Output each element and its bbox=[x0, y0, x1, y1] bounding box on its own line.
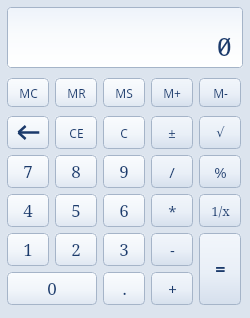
button[interactable]: 1/x bbox=[199, 194, 241, 227]
button[interactable]: √ bbox=[199, 116, 241, 149]
button[interactable]: * bbox=[151, 194, 193, 227]
button[interactable]: ± bbox=[151, 116, 193, 149]
button[interactable]: C bbox=[103, 116, 145, 149]
staticText: 9 bbox=[119, 160, 129, 183]
staticText: . bbox=[122, 277, 127, 300]
button[interactable]: 3 bbox=[103, 233, 145, 266]
staticText: ± bbox=[168, 124, 176, 142]
staticText: 4 bbox=[23, 199, 33, 222]
button[interactable]: 4 bbox=[7, 194, 49, 227]
staticText: / bbox=[169, 162, 175, 182]
button[interactable]: MR bbox=[55, 78, 97, 107]
staticText: MC bbox=[19, 85, 38, 101]
button[interactable]: M+ bbox=[151, 78, 193, 107]
button[interactable]: - bbox=[151, 233, 193, 266]
staticText: % bbox=[214, 162, 227, 182]
staticText: 8 bbox=[71, 160, 81, 183]
button[interactable]: / bbox=[151, 155, 193, 188]
button[interactable]: CE bbox=[55, 116, 97, 149]
staticText: M- bbox=[213, 85, 228, 101]
button[interactable]: + bbox=[151, 272, 193, 305]
button[interactable]: Backspace bbox=[7, 116, 49, 149]
button[interactable]: % bbox=[199, 155, 241, 188]
staticText: 0 bbox=[47, 277, 57, 300]
button[interactable]: = bbox=[199, 233, 241, 305]
staticText: 1/x bbox=[211, 202, 230, 220]
staticText: 6 bbox=[119, 199, 129, 222]
staticText: = bbox=[215, 257, 226, 282]
staticText: - bbox=[170, 240, 175, 260]
staticText: 2 bbox=[71, 238, 81, 261]
staticText: 3 bbox=[119, 238, 129, 261]
button[interactable]: . bbox=[103, 272, 145, 305]
staticText: MS bbox=[115, 85, 133, 101]
button[interactable]: 1 bbox=[7, 233, 49, 266]
staticText: 0 bbox=[217, 28, 232, 63]
button[interactable]: MC bbox=[7, 78, 49, 107]
staticText: 1 bbox=[23, 238, 33, 261]
button[interactable]: 6 bbox=[103, 194, 145, 227]
staticText: 5 bbox=[71, 199, 81, 222]
staticText: √ bbox=[216, 125, 225, 140]
staticText: 7 bbox=[23, 160, 33, 183]
button[interactable]: MS bbox=[103, 78, 145, 107]
button[interactable]: 5 bbox=[55, 194, 97, 227]
staticText: MR bbox=[67, 85, 86, 101]
button[interactable]: 8 bbox=[55, 155, 97, 188]
staticText: CE bbox=[69, 125, 84, 141]
button[interactable]: M- bbox=[199, 78, 241, 107]
button[interactable]: 9 bbox=[103, 155, 145, 188]
staticText: * bbox=[168, 201, 177, 221]
staticText: C bbox=[120, 125, 128, 141]
button[interactable]: 2 bbox=[55, 233, 97, 266]
button[interactable]: 7 bbox=[7, 155, 49, 188]
staticText: M+ bbox=[163, 85, 181, 101]
button[interactable]: 0 bbox=[7, 272, 97, 305]
staticText: + bbox=[168, 279, 177, 299]
